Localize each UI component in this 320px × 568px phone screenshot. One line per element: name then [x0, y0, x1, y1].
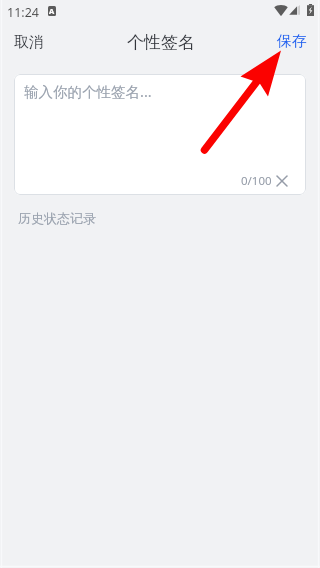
staticText: 保存 — [277, 32, 307, 51]
staticText: 0/100 — [241, 173, 272, 189]
button[interactable]: 保存 — [263, 25, 320, 58]
staticText: 11:24 — [7, 4, 39, 21]
button[interactable]: 取消 — [0, 26, 58, 59]
button[interactable]: 历史状态记录 — [18, 210, 96, 226]
button[interactable]: Clear text — [273, 172, 291, 190]
staticText: 输入你的个性签名... — [24, 81, 152, 101]
staticText: A — [49, 6, 55, 16]
staticText: 个性签名 — [127, 32, 195, 53]
button[interactable]: 输入你的个性签名... — [14, 74, 306, 195]
staticText: 取消 — [14, 33, 44, 52]
